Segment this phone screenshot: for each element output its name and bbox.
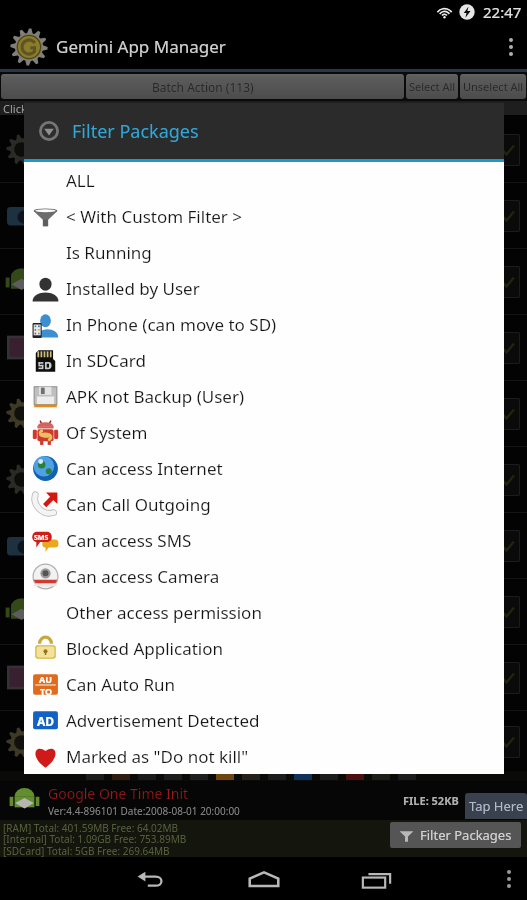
button[interactable]: Gallery xyxy=(0,645,527,710)
staticText: Can Auto Run xyxy=(66,673,176,696)
staticText: Gallery xyxy=(42,660,89,679)
staticText: Advertisement Detected xyxy=(66,709,260,732)
button[interactable]: ALL xyxy=(24,162,504,198)
staticText: AU xyxy=(39,673,53,685)
staticText: Click xyxy=(3,101,27,115)
staticText: [RAM] Total: 401.59MB Free: 64.02MB [Int… xyxy=(3,821,187,857)
staticText: APK not Backup (User) xyxy=(66,385,245,408)
staticText: Installed by User xyxy=(66,277,200,300)
staticText: Batch Action (113) xyxy=(152,79,254,95)
staticText: FILE: 52KB xyxy=(403,793,459,808)
staticText: Camera xyxy=(42,198,94,217)
staticText: Other access permission xyxy=(66,601,262,624)
button[interactable]: Blocked Application xyxy=(24,630,504,666)
staticText: Of System xyxy=(66,421,148,444)
staticText: Filter Packages xyxy=(72,119,199,144)
button[interactable]: Of System xyxy=(24,414,504,450)
button[interactable]: Unselect All xyxy=(460,74,526,99)
button[interactable]: Android Core xyxy=(0,579,527,644)
button[interactable]: System Service xyxy=(0,117,527,182)
staticText: ALL xyxy=(66,169,95,192)
button[interactable]: Home xyxy=(208,857,320,900)
staticText: Settings xyxy=(42,396,96,415)
staticText: Can access Camera xyxy=(66,565,220,588)
button[interactable]: Marked as "Do not kill" xyxy=(24,738,504,774)
button[interactable]: Installed by User xyxy=(24,270,504,306)
staticText: Unselect All xyxy=(463,79,524,94)
button[interactable]: Can access Camera xyxy=(24,558,504,594)
button[interactable]: In Phone (can move to SD) xyxy=(24,306,504,342)
staticText: Ver:4.4-896101 Date:2008-08-01 20:00:00 xyxy=(48,804,240,818)
staticText: Ver:1.0 Date:2012-01-01 xyxy=(42,153,155,167)
staticText: Android Core xyxy=(42,264,129,283)
staticText: TO xyxy=(40,685,53,697)
button[interactable]: AU xyxy=(24,666,504,702)
button[interactable]: Is Running xyxy=(24,234,504,270)
button[interactable]: APK not Backup (User) xyxy=(24,378,504,414)
staticText: Blocked Application xyxy=(66,637,223,660)
staticText: Can access Internet xyxy=(66,457,223,480)
staticText: SMS xyxy=(34,533,49,543)
staticText: Marked as "Do not kill" xyxy=(66,745,249,768)
button[interactable]: Select All xyxy=(406,74,458,99)
button[interactable]: SMS xyxy=(24,522,504,558)
button[interactable]: Camera xyxy=(0,183,527,248)
button[interactable]: Filter Packages xyxy=(24,103,504,159)
staticText: Ver:1.0 Date:2012-01-01 xyxy=(42,746,155,760)
button[interactable]: Camera xyxy=(0,513,527,578)
staticText: Ver:1.0 Date:2012-01-01 xyxy=(42,483,155,497)
button[interactable]: Back xyxy=(96,857,208,900)
button[interactable]: More options xyxy=(495,24,527,69)
staticText: In SDCard xyxy=(66,349,146,372)
staticText: Ver:1.0 Date:2012-01-01 xyxy=(42,681,155,695)
button[interactable]: Android Core xyxy=(0,249,527,314)
staticText: Can access SMS xyxy=(66,529,192,552)
staticText: Settings xyxy=(42,725,96,744)
button[interactable]: Recents xyxy=(320,857,432,900)
staticText: Ver:1.0 Date:2012-01-01 xyxy=(42,615,155,629)
button[interactable]: AD xyxy=(24,702,504,738)
staticText: Ver:1.0 Date:2012-01-01 xyxy=(42,285,155,299)
button[interactable]: Other access permission xyxy=(24,594,504,630)
button[interactable]: Batch Action (113) xyxy=(1,74,404,99)
staticText: Gallery xyxy=(42,330,89,349)
staticText: Google One Time Init xyxy=(48,784,189,803)
staticText: Can Call Outgoing xyxy=(66,493,211,516)
staticText: AD xyxy=(37,713,55,729)
button[interactable]: Menu xyxy=(491,857,527,900)
staticText: Android Core xyxy=(42,594,129,613)
staticText: Ver:1.0 Date:2012-01-01 xyxy=(42,351,155,365)
staticText: Filter Packages xyxy=(420,826,512,844)
button[interactable]: Can Call Outgoing xyxy=(24,486,504,522)
staticText: Ver:1.0 Date:2012-01-01 xyxy=(42,417,155,431)
button[interactable]: Filter Packages xyxy=(399,826,512,844)
button[interactable]: System Service xyxy=(0,447,527,512)
button[interactable]: Tap Here xyxy=(465,793,527,819)
button[interactable]: Settings xyxy=(0,381,527,446)
staticText: 22:47 xyxy=(483,2,522,22)
button[interactable]: Gallery xyxy=(0,315,527,380)
staticText: Camera xyxy=(42,528,94,547)
button[interactable]: In SDCard xyxy=(24,342,504,378)
button[interactable]: Can access Internet xyxy=(24,450,504,486)
staticText: Ver:1.0 Date:2012-01-01 xyxy=(42,219,155,233)
staticText: Gemini App Manager xyxy=(56,35,226,58)
staticText: In Phone (can move to SD) xyxy=(66,313,277,336)
button[interactable]: < With Custom Filter > xyxy=(24,198,504,234)
staticText: System Service xyxy=(42,462,140,481)
staticText: < With Custom Filter > xyxy=(66,205,243,228)
staticText: Is Running xyxy=(66,241,152,264)
staticText: Select All xyxy=(409,79,456,94)
button[interactable]: Settings xyxy=(0,711,527,771)
staticText: System Service xyxy=(42,132,140,151)
staticText: Ver:1.0 Date:2012-01-01 xyxy=(42,549,155,563)
staticText: Tap Here xyxy=(469,797,524,815)
